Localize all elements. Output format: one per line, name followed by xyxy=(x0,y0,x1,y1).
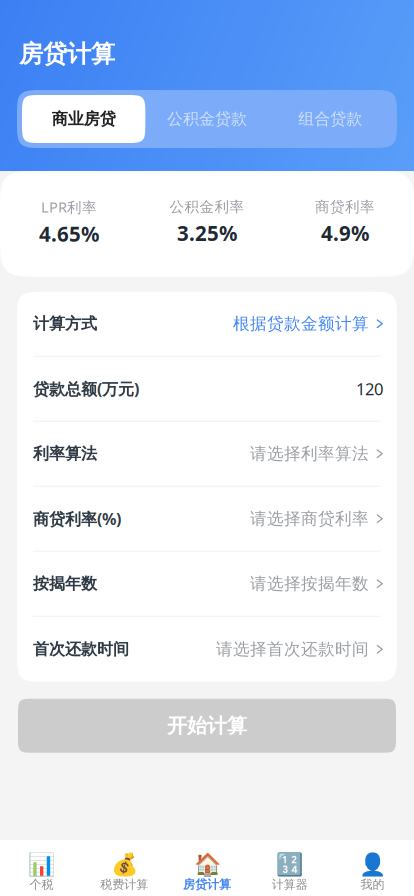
staticText: 请选择首次还款时间 xyxy=(216,639,369,660)
staticText: 请选择利率算法 xyxy=(250,443,369,464)
staticText: 利率算法 xyxy=(33,444,97,464)
staticText: 根据贷款金额计算 xyxy=(233,313,369,334)
staticText: 请选择按揭年数 xyxy=(250,573,369,594)
button[interactable]: 🏠 xyxy=(166,851,248,892)
staticText: 🏠 xyxy=(193,851,220,877)
button[interactable]: 组合贷款 xyxy=(269,95,392,143)
button[interactable]: 利率算法 xyxy=(17,422,397,487)
button[interactable]: 贷款总额(万元) xyxy=(17,357,397,422)
button[interactable]: 商贷利率(%) xyxy=(17,487,397,552)
staticText: 4.65% xyxy=(39,220,99,248)
staticText: 计算器 xyxy=(272,877,308,892)
staticText: 公积金贷款 xyxy=(167,109,247,129)
staticText: 首次还款时间 xyxy=(33,639,129,659)
button[interactable]: 商业房贷 xyxy=(22,95,145,143)
staticText: 计算方式 xyxy=(33,314,97,334)
staticText: 我的 xyxy=(361,877,385,892)
button[interactable]: 计算方式 xyxy=(17,292,397,357)
staticText: 请选择商贷利率 xyxy=(250,508,369,529)
staticText: 3.25% xyxy=(177,219,237,247)
button[interactable]: 📊 xyxy=(0,851,83,892)
button[interactable]: 按揭年数 xyxy=(17,552,397,617)
staticText: 商贷利率(%) xyxy=(33,508,121,530)
staticText: 商业房贷 xyxy=(52,109,116,129)
staticText: 120 xyxy=(356,377,383,400)
staticText: 房贷计算 xyxy=(19,39,115,69)
staticText: 贷款总额(万元) xyxy=(33,378,139,400)
button[interactable]: 公积金贷款 xyxy=(145,95,269,143)
button[interactable]: 💰 xyxy=(83,851,166,892)
staticText: 开始计算 xyxy=(167,713,247,738)
staticText: 📊 xyxy=(28,851,55,877)
button[interactable]: 首次还款时间 xyxy=(17,617,397,682)
staticText: 4.9% xyxy=(321,219,369,247)
staticText: 商贷利率 xyxy=(315,198,375,216)
staticText: 税费计算 xyxy=(100,877,148,892)
staticText: 组合贷款 xyxy=(298,109,362,129)
staticText: 房贷计算 xyxy=(183,877,231,892)
staticText: 按揭年数 xyxy=(33,574,97,594)
staticText: 个税 xyxy=(29,877,53,892)
button[interactable]: 👤 xyxy=(331,851,414,892)
staticText: LPR利率 xyxy=(41,197,97,217)
button[interactable]: 🔢 xyxy=(248,851,331,892)
button[interactable]: 开始计算 xyxy=(18,699,396,753)
staticText: 👤 xyxy=(359,851,386,877)
staticText: 公积金利率 xyxy=(169,198,244,216)
staticText: 🔢 xyxy=(276,851,303,877)
staticText: 💰 xyxy=(111,851,138,877)
